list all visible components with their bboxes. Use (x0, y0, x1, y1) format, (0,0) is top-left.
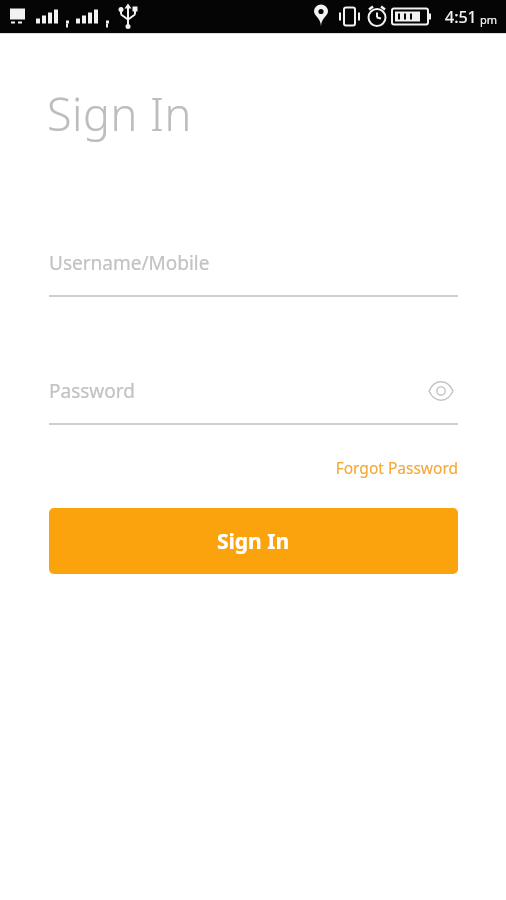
staticText: Password (49, 378, 135, 404)
button[interactable]: Username/Mobile (49, 240, 458, 297)
staticText: Sign In (217, 527, 290, 556)
button[interactable]: Show password (424, 374, 458, 408)
staticText: Forgot Password (335, 457, 458, 478)
button[interactable]: Sign In (49, 508, 458, 574)
staticText: Sign In (47, 83, 192, 144)
staticText: 4:51 (445, 6, 477, 28)
staticText: pm (480, 12, 498, 27)
button[interactable]: Password (49, 368, 458, 425)
staticText: Username/Mobile (49, 250, 210, 276)
button[interactable]: Forgot Password (300, 452, 458, 482)
